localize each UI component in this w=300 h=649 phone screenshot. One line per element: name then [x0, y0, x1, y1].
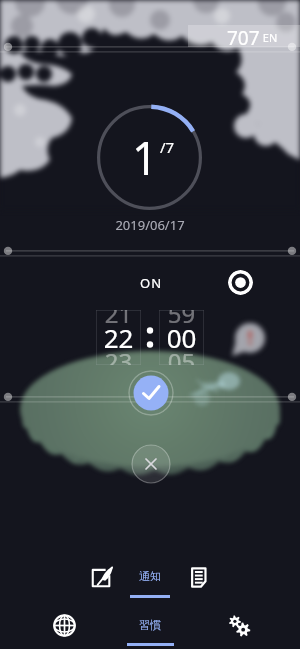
staticText: 通知 [124, 569, 176, 583]
button[interactable]: Target [228, 270, 253, 295]
button[interactable]: Confirm [128, 370, 174, 416]
staticText: 2019/06/17 [0, 216, 300, 234]
button[interactable]: 59 [159, 310, 204, 365]
staticText: 23 [96, 345, 141, 365]
button[interactable]: 707 [188, 25, 300, 47]
staticText: 22 [96, 320, 141, 355]
button[interactable]: 習慣 [124, 618, 176, 646]
button[interactable]: 通知 [124, 569, 176, 598]
button[interactable]: Close [131, 444, 171, 484]
button[interactable]: Documents [187, 565, 211, 589]
button[interactable]: 21 [96, 310, 141, 365]
staticText: 707 [227, 25, 260, 47]
button[interactable]: Compose [89, 565, 113, 589]
staticText: 習慣 [124, 618, 176, 632]
staticText: 00 [159, 320, 204, 355]
staticText: /7 [160, 137, 175, 157]
staticText: 59 [159, 310, 204, 330]
button[interactable]: Language [52, 613, 76, 637]
staticText: EN [260, 30, 278, 45]
staticText: 1 [132, 127, 158, 188]
staticText: ON [140, 274, 163, 292]
staticText: 21 [96, 310, 141, 330]
staticText: 05 [159, 345, 204, 365]
button[interactable]: Settings [227, 613, 251, 637]
